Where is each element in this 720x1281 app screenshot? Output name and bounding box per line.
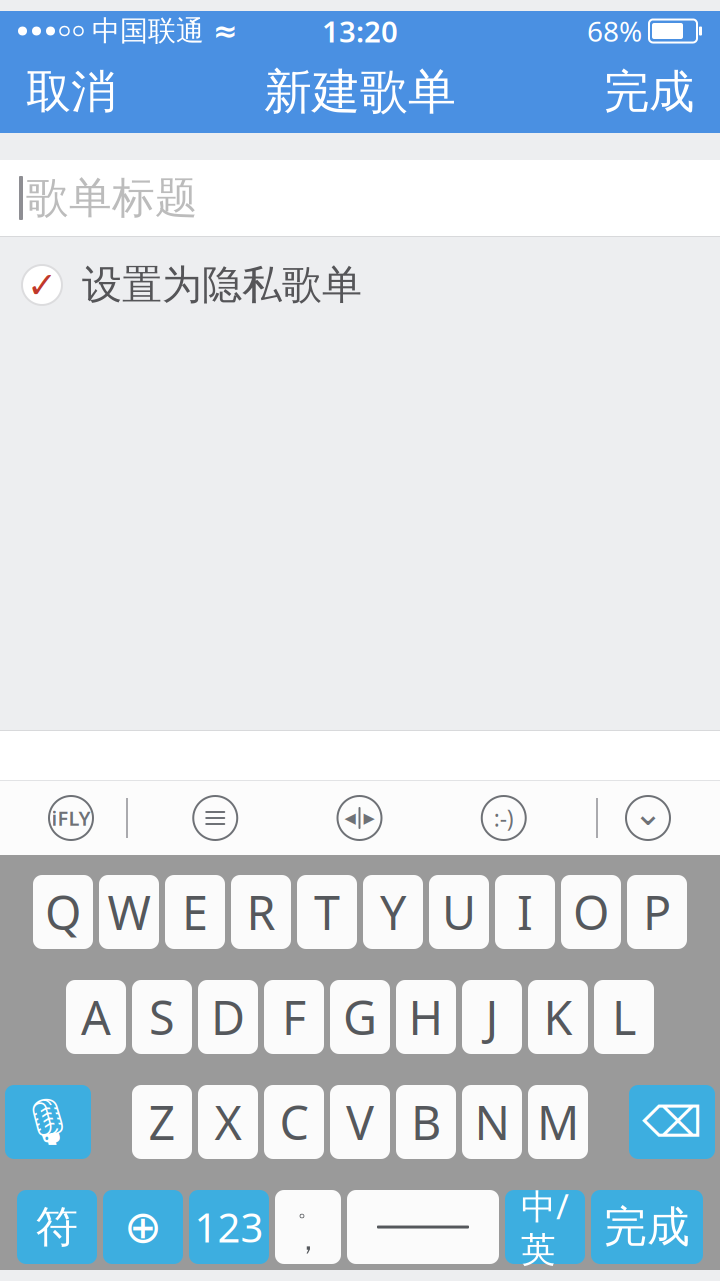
button[interactable]: J bbox=[462, 980, 522, 1054]
staticText: 中国联通 bbox=[92, 14, 204, 48]
staticText: 完成 bbox=[604, 1201, 690, 1253]
staticText: S bbox=[149, 986, 175, 1048]
button[interactable]: 讯飞输入 bbox=[40, 787, 102, 849]
staticText: U bbox=[442, 881, 476, 943]
staticText: R bbox=[246, 881, 275, 943]
staticText: Y bbox=[380, 881, 406, 943]
button[interactable]: 中英切换 bbox=[505, 1190, 585, 1264]
staticText: 设置为隐私歌单 bbox=[82, 260, 362, 309]
button[interactable]: 空格 bbox=[347, 1190, 499, 1264]
button[interactable]: 表情 bbox=[473, 787, 535, 849]
button[interactable]: 完成 bbox=[591, 1190, 703, 1264]
staticText: 中/英 bbox=[521, 1183, 569, 1271]
button[interactable]: 数字 bbox=[189, 1190, 269, 1264]
staticText: 完成 bbox=[604, 64, 694, 120]
staticText: E bbox=[182, 881, 208, 943]
staticText: N bbox=[474, 1091, 509, 1153]
staticText: D bbox=[211, 986, 245, 1048]
staticText: ≈ bbox=[213, 14, 238, 48]
staticText: C bbox=[279, 1091, 308, 1153]
staticText: M bbox=[537, 1091, 579, 1153]
button[interactable]: 语音输入 bbox=[5, 1085, 91, 1159]
button[interactable]: G bbox=[330, 980, 390, 1054]
staticText: ⌄ bbox=[633, 793, 662, 833]
button[interactable]: K bbox=[528, 980, 588, 1054]
staticText: Q bbox=[45, 881, 81, 943]
staticText: P bbox=[643, 881, 671, 943]
staticText: H bbox=[408, 986, 443, 1048]
staticText: 123 bbox=[194, 1200, 263, 1253]
button[interactable]: D bbox=[198, 980, 258, 1054]
staticText: Z bbox=[148, 1091, 175, 1153]
staticText: V bbox=[346, 1091, 374, 1153]
button[interactable]: S bbox=[132, 980, 192, 1054]
staticText: 符 bbox=[35, 1201, 78, 1253]
staticText: 取消 bbox=[26, 64, 116, 120]
staticText: L bbox=[612, 986, 636, 1048]
button[interactable]: Q bbox=[33, 875, 93, 949]
button[interactable]: M bbox=[528, 1085, 588, 1159]
staticText: ✓ bbox=[27, 265, 57, 305]
staticText: ◀ bbox=[344, 810, 355, 826]
button[interactable]: B bbox=[396, 1085, 456, 1159]
button[interactable]: 符号 bbox=[17, 1190, 97, 1264]
button[interactable]: N bbox=[462, 1085, 522, 1159]
button[interactable]: O bbox=[561, 875, 621, 949]
staticText: T bbox=[314, 881, 340, 943]
button[interactable]: C bbox=[264, 1085, 324, 1159]
button[interactable]: X bbox=[198, 1085, 258, 1159]
staticText: F bbox=[282, 986, 306, 1048]
staticText: ⌫ bbox=[642, 1098, 702, 1146]
staticText: ， bbox=[293, 1222, 322, 1258]
button[interactable]: U bbox=[429, 875, 489, 949]
button[interactable]: T bbox=[297, 875, 357, 949]
button[interactable]: Y bbox=[363, 875, 423, 949]
staticText: B bbox=[411, 1091, 441, 1153]
button[interactable]: P bbox=[627, 875, 687, 949]
button[interactable]: F bbox=[264, 980, 324, 1054]
staticText: 🎙 bbox=[19, 1096, 77, 1148]
staticText: A bbox=[81, 986, 111, 1048]
staticText: 新建歌单 bbox=[264, 62, 456, 121]
staticText: 13:20 bbox=[322, 11, 398, 50]
button[interactable]: 短信 bbox=[184, 787, 246, 849]
button[interactable]: A bbox=[66, 980, 126, 1054]
staticText: ⊕ bbox=[124, 1201, 162, 1253]
staticText: 。 bbox=[297, 1196, 318, 1222]
button[interactable]: 标点 bbox=[275, 1190, 341, 1264]
button[interactable]: H bbox=[396, 980, 456, 1054]
staticText: iFLY bbox=[51, 805, 90, 831]
staticText: 歌单标题 bbox=[26, 172, 198, 224]
staticText: X bbox=[214, 1091, 241, 1153]
staticText: J bbox=[485, 986, 498, 1048]
button[interactable]: 删除 bbox=[629, 1085, 715, 1159]
staticText: I bbox=[517, 881, 533, 943]
button[interactable]: 移动光标 bbox=[328, 787, 390, 849]
button[interactable]: R bbox=[231, 875, 291, 949]
staticText: 68% bbox=[587, 12, 642, 50]
button[interactable]: I bbox=[495, 875, 555, 949]
button[interactable]: 收起键盘 bbox=[617, 787, 679, 849]
button[interactable]: L bbox=[594, 980, 654, 1054]
button[interactable]: 切换输入法 bbox=[103, 1190, 183, 1264]
button[interactable]: V bbox=[330, 1085, 390, 1159]
staticText: W bbox=[107, 881, 150, 943]
button[interactable]: E bbox=[165, 875, 225, 949]
button[interactable]: W bbox=[99, 875, 159, 949]
staticText: O bbox=[573, 881, 609, 943]
button[interactable]: ✓ bbox=[0, 246, 720, 324]
button[interactable]: 取消 bbox=[0, 51, 142, 133]
staticText: G bbox=[343, 986, 377, 1048]
staticText: K bbox=[543, 986, 572, 1048]
button[interactable]: Z bbox=[132, 1085, 192, 1159]
button[interactable]: 完成 bbox=[578, 51, 720, 133]
staticText: :‑) bbox=[494, 803, 514, 833]
staticText: ▶ bbox=[363, 810, 374, 826]
